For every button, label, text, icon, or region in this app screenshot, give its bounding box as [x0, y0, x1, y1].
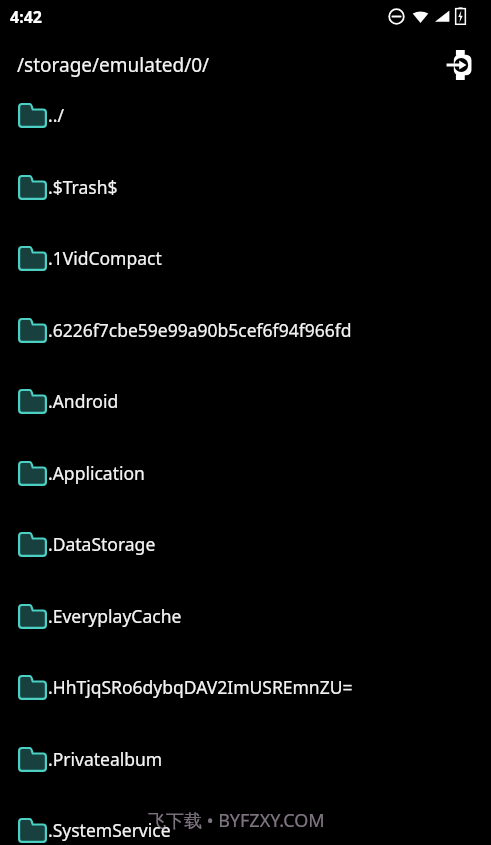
button[interactable]: Send to watch — [435, 41, 483, 89]
staticText: .Privatealbum — [48, 747, 491, 771]
staticText: .1VidCompact — [48, 246, 491, 270]
staticText: .DataStorage — [48, 532, 491, 556]
staticText: ../ — [48, 103, 491, 127]
button[interactable]: .SystemService — [0, 794, 491, 845]
button[interactable]: .Application — [0, 437, 491, 509]
button[interactable]: .EveryplayCache — [0, 580, 491, 652]
button[interactable]: ../ — [0, 79, 491, 151]
button[interactable]: .DataStorage — [0, 508, 491, 580]
staticText: .$Trash$ — [48, 175, 491, 199]
button[interactable]: .$Trash$ — [0, 151, 491, 223]
staticText: .HhTjqSRo6dybqDAV2ImUSREmnZU= — [48, 675, 491, 699]
button[interactable]: .1VidCompact — [0, 222, 491, 294]
staticText: .Android — [48, 389, 491, 413]
staticText: .6226f7cbe59e99a90b5cef6f94f966fd — [48, 318, 491, 342]
staticText: 飞下载 • BYFZXY.COM — [148, 808, 325, 833]
button[interactable]: .6226f7cbe59e99a90b5cef6f94f966fd — [0, 294, 491, 366]
button[interactable]: .Privatealbum — [0, 723, 491, 795]
staticText: .Application — [48, 461, 491, 485]
staticText: 4:42 — [10, 6, 42, 28]
staticText: .SystemService — [48, 818, 491, 842]
button[interactable]: .HhTjqSRo6dybqDAV2ImUSREmnZU= — [0, 651, 491, 723]
button[interactable]: .Android — [0, 365, 491, 437]
staticText: .EveryplayCache — [48, 604, 491, 628]
staticText: /storage/emulated/0/ — [17, 52, 210, 78]
